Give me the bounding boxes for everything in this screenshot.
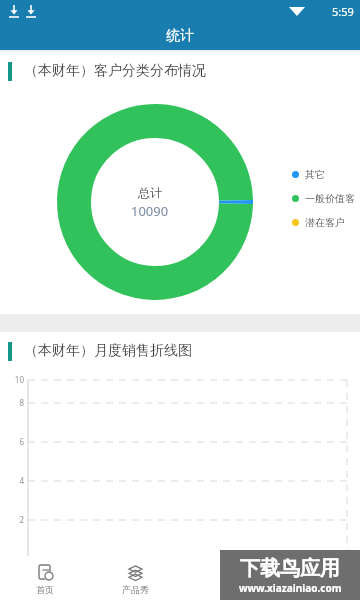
staticText: 2: [19, 514, 24, 525]
staticText: 10090: [131, 202, 169, 220]
staticText: 首页: [36, 584, 54, 595]
staticText: 5:59: [332, 4, 354, 19]
staticText: 统计: [166, 27, 194, 45]
staticText: 8: [19, 397, 24, 408]
button[interactable]: 产品秀: [90, 558, 180, 600]
button[interactable]: 首页: [0, 558, 90, 600]
staticText: 产品秀: [122, 584, 149, 595]
staticText: （本财年）客户分类分布情况: [24, 62, 206, 80]
other: 首页: [37, 564, 54, 581]
staticText: www.xiazainiao.com: [239, 581, 342, 595]
other: 产品秀: [127, 564, 144, 581]
staticText: 其它: [305, 168, 325, 181]
staticText: 10: [14, 374, 24, 385]
staticText: 4: [19, 475, 24, 486]
staticText: 潜在客户: [305, 216, 345, 229]
staticText: 总计: [138, 185, 162, 200]
staticText: （本财年）月度销售折线图: [24, 342, 192, 360]
staticText: 下载鸟应用: [240, 556, 340, 581]
staticText: 一般价值客: [305, 192, 355, 205]
staticText: 6: [19, 436, 24, 447]
